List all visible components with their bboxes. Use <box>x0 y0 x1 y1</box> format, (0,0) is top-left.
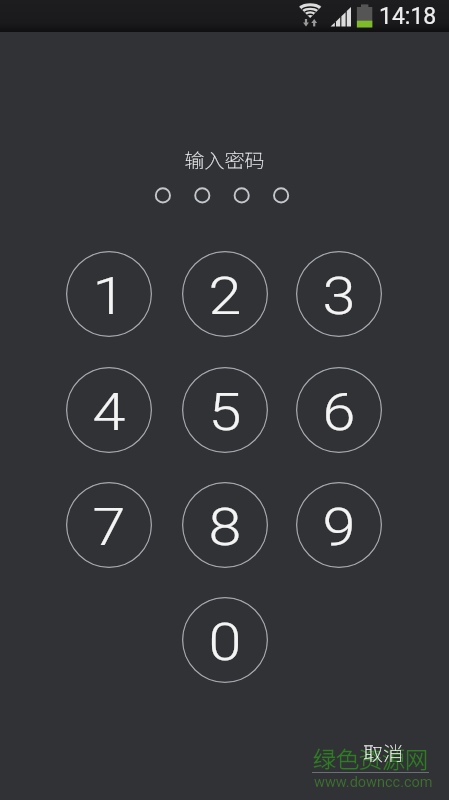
other: Wi-Fi connected <box>296 0 324 32</box>
staticText: 8 <box>208 497 241 558</box>
staticText: 14:18 <box>379 3 437 30</box>
other: Battery <box>355 0 375 32</box>
staticText: 5 <box>208 382 241 443</box>
staticText: 取消 <box>363 738 403 767</box>
staticText: 0 <box>208 612 241 673</box>
staticText: 3 <box>322 266 355 327</box>
button[interactable]: 2 <box>182 251 268 337</box>
button[interactable]: 1 <box>66 251 152 337</box>
other: Mobile signal, 4 bars <box>329 0 353 32</box>
staticText: 2 <box>208 266 241 327</box>
button[interactable]: 0 <box>182 597 268 683</box>
button[interactable]: 6 <box>296 367 382 453</box>
staticText: 输入密码 <box>0 145 449 174</box>
staticText: 4 <box>92 382 125 443</box>
staticText: www.downcc.com <box>314 774 433 791</box>
staticText: 绿色资源网 <box>313 741 428 774</box>
button[interactable]: 9 <box>296 482 382 568</box>
other: PIN entry, 0 of 4 digits entered <box>0 0 449 800</box>
staticText: 7 <box>92 497 125 558</box>
button[interactable]: 5 <box>182 367 268 453</box>
button[interactable]: 4 <box>66 367 152 453</box>
button[interactable]: 7 <box>66 482 152 568</box>
staticText: 9 <box>322 497 355 558</box>
staticText: 1 <box>92 266 125 327</box>
button[interactable]: 3 <box>296 251 382 337</box>
staticText: 6 <box>322 382 355 443</box>
button[interactable]: 取消 <box>355 732 411 773</box>
button[interactable]: 8 <box>182 482 268 568</box>
